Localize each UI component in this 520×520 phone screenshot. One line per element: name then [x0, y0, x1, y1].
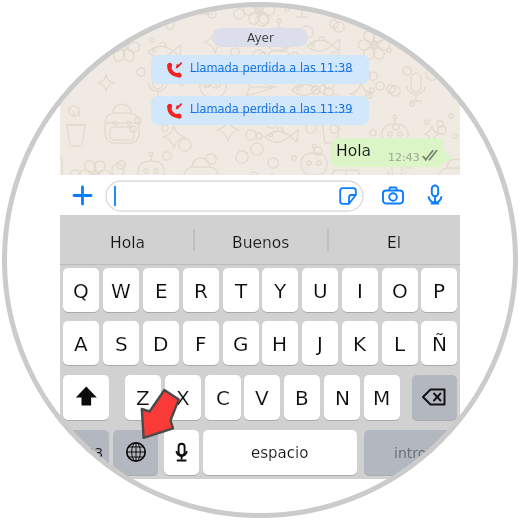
- staticText: Hola: [110, 234, 145, 252]
- staticText: ?123: [69, 445, 104, 461]
- button[interactable]: Hola: [60, 219, 194, 267]
- staticText: I: [357, 279, 363, 302]
- staticText: Ayer: [247, 31, 274, 45]
- button[interactable]: Voice message: [422, 183, 448, 209]
- button[interactable]: espacio: [203, 430, 357, 475]
- staticText: C: [216, 386, 230, 409]
- button[interactable]: M: [364, 375, 400, 420]
- staticText: Ñ: [432, 332, 447, 355]
- staticText: F: [195, 332, 207, 355]
- button[interactable]: ?123: [63, 430, 109, 475]
- staticText: intro: [394, 445, 427, 461]
- staticText: R: [194, 279, 208, 302]
- button[interactable]: Backspace: [412, 375, 457, 420]
- button[interactable]: Ñ: [421, 321, 457, 365]
- button[interactable]: Buenos: [194, 219, 328, 267]
- staticText: A: [74, 332, 88, 355]
- button[interactable]: L: [382, 321, 418, 365]
- button[interactable]: A: [63, 321, 99, 365]
- button[interactable]: K: [342, 321, 378, 365]
- button[interactable]: Y: [262, 268, 298, 312]
- staticText: Buenos: [232, 234, 290, 252]
- button[interactable]: Voice input: [164, 430, 199, 475]
- button[interactable]: Ayer: [212, 28, 308, 47]
- button[interactable]: Sticker: [335, 183, 361, 209]
- staticText: M: [373, 386, 391, 409]
- button[interactable]: I: [342, 268, 378, 312]
- button[interactable]: W: [103, 268, 139, 312]
- staticText: B: [295, 386, 309, 409]
- button[interactable]: E: [143, 268, 179, 312]
- staticText: W: [111, 279, 131, 302]
- staticText: E: [155, 279, 168, 302]
- button[interactable]: D: [143, 321, 179, 365]
- staticText: T: [235, 279, 248, 302]
- staticText: L: [394, 332, 406, 355]
- button[interactable]: [331, 138, 444, 167]
- staticText: N: [335, 386, 350, 409]
- button[interactable]: R: [183, 268, 219, 312]
- button[interactable]: N: [324, 375, 360, 420]
- button[interactable]: G: [223, 321, 259, 365]
- staticText: D: [153, 332, 169, 355]
- button[interactable]: F: [183, 321, 219, 365]
- staticText: espacio: [251, 444, 309, 461]
- staticText: Llamada perdida a las 11:39: [190, 102, 353, 115]
- staticText: 12:43: [388, 151, 420, 164]
- staticText: Q: [73, 279, 89, 302]
- button[interactable]: [151, 96, 369, 125]
- button[interactable]: S: [103, 321, 139, 365]
- staticText: V: [255, 386, 269, 409]
- staticText: H: [272, 332, 288, 355]
- button[interactable]: J: [302, 321, 338, 365]
- staticText: O: [392, 279, 408, 302]
- button[interactable]: Change language: [113, 430, 158, 475]
- button[interactable]: T: [223, 268, 259, 312]
- button[interactable]: X: [165, 375, 201, 420]
- button[interactable]: [151, 55, 369, 84]
- button[interactable]: intro: [364, 430, 457, 475]
- staticText: Z: [136, 386, 150, 409]
- button[interactable]: P: [421, 268, 457, 312]
- staticText: El: [387, 234, 402, 252]
- button[interactable]: Q: [63, 268, 99, 312]
- staticText: P: [433, 279, 446, 302]
- staticText: U: [313, 279, 328, 302]
- button[interactable]: V: [244, 375, 280, 420]
- staticText: J: [317, 332, 323, 355]
- staticText: K: [353, 332, 367, 355]
- staticText: X: [176, 386, 190, 409]
- staticText: S: [115, 332, 128, 355]
- button[interactable]: Shift: [63, 375, 109, 420]
- staticText: Hola: [336, 142, 371, 160]
- staticText: Y: [274, 279, 287, 302]
- button[interactable]: Camera: [380, 183, 406, 209]
- button[interactable]: U: [302, 268, 338, 312]
- button[interactable]: C: [205, 375, 241, 420]
- button[interactable]: Attach: [70, 183, 95, 208]
- button[interactable]: H: [262, 321, 298, 365]
- button[interactable]: Z: [125, 375, 161, 420]
- button[interactable]: El: [328, 219, 460, 267]
- staticText: Llamada perdida a las 11:38: [190, 61, 353, 74]
- staticText: G: [233, 332, 249, 355]
- button[interactable]: O: [382, 268, 418, 312]
- button[interactable]: B: [284, 375, 320, 420]
